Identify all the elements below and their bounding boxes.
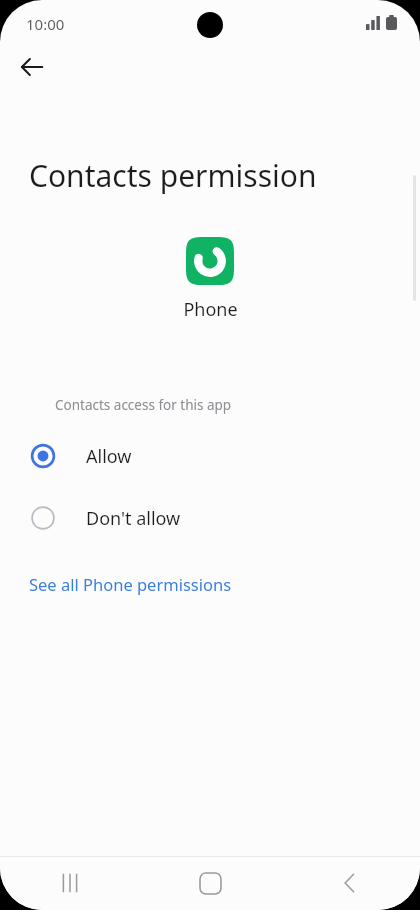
staticText: Allow [86, 444, 132, 469]
button[interactable]: Home [140, 856, 280, 910]
staticText: Don't allow [86, 506, 181, 531]
button[interactable]: Back [10, 45, 54, 89]
button[interactable]: Back [280, 856, 420, 910]
staticText: 10:00 [26, 14, 65, 34]
button[interactable]: Don't allow [0, 497, 420, 539]
button[interactable]: Recent apps [0, 856, 140, 910]
staticText: Phone [183, 297, 238, 322]
staticText: See all Phone permissions [29, 573, 232, 595]
button[interactable]: See all Phone permissions [0, 567, 420, 601]
button[interactable]: Allow [0, 435, 420, 477]
staticText: Contacts permission [29, 155, 317, 196]
staticText: Contacts access for this app [55, 396, 232, 414]
